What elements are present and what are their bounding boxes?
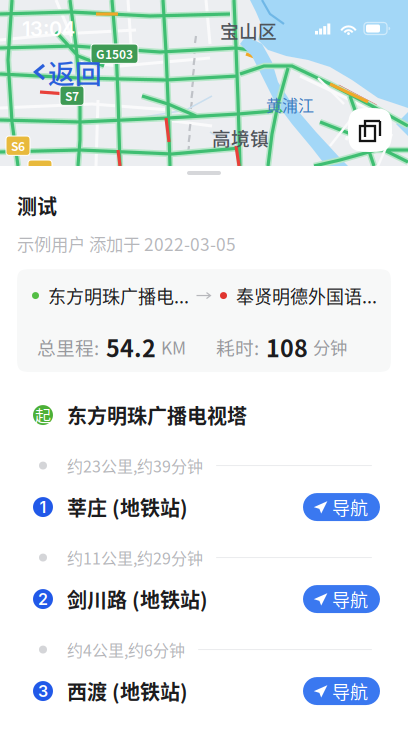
- button[interactable]: 起: [0, 390, 408, 440]
- button[interactable]: Map layers: [348, 108, 392, 152]
- staticText: 导航: [332, 494, 368, 520]
- button[interactable]: 导航: [303, 493, 380, 521]
- button[interactable]: 1: [0, 482, 408, 532]
- staticText: 导航: [332, 678, 368, 704]
- staticText: 宝山区: [220, 17, 277, 44]
- staticText: S5: [33, 161, 47, 178]
- staticText: 约23公里,约39分钟: [67, 454, 203, 477]
- button[interactable]: 导航: [303, 585, 380, 613]
- staticText: 奉贤明德外国语...: [236, 282, 377, 309]
- button[interactable]: 2: [0, 574, 408, 624]
- staticText: 东方明珠广播电视塔: [67, 401, 247, 430]
- button[interactable]: 3: [0, 666, 408, 716]
- staticText: 1: [39, 497, 46, 517]
- button[interactable]: 返回: [26, 54, 112, 90]
- staticText: 东方明珠广播电...: [48, 282, 189, 309]
- staticText: 测试: [17, 191, 57, 220]
- staticText: 起: [35, 403, 51, 427]
- staticText: 示例用户 添加于 2022-03-05: [17, 231, 236, 256]
- staticText: 约4公里,约6分钟: [67, 638, 185, 661]
- staticText: 耗时:: [216, 333, 259, 360]
- staticText: KM: [161, 334, 186, 360]
- staticText: 导航: [332, 586, 368, 612]
- staticText: 13:04: [22, 17, 75, 41]
- staticText: 2: [38, 589, 48, 609]
- staticText: 黄浦江: [266, 93, 314, 116]
- staticText: G1503: [96, 45, 133, 62]
- staticText: 莘庄 (地铁站): [67, 493, 188, 522]
- staticText: 分钟: [313, 334, 347, 360]
- staticText: 西渡 (地铁站): [67, 677, 188, 706]
- staticText: 返回: [48, 53, 102, 91]
- staticText: 总里程:: [37, 333, 99, 360]
- staticText: 高境镇: [212, 124, 269, 151]
- staticText: 108: [266, 330, 308, 364]
- staticText: 约11公里,约29分钟: [67, 546, 203, 569]
- button[interactable]: 导航: [303, 677, 380, 705]
- staticText: 3: [38, 681, 48, 701]
- staticText: 剑川路 (地铁站): [67, 585, 208, 614]
- staticText: S6: [11, 137, 25, 154]
- staticText: S7: [65, 87, 79, 104]
- staticText: 54.2: [106, 330, 156, 364]
